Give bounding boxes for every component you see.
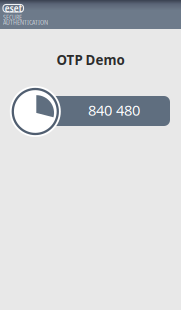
staticText: OTP Demo (56, 51, 124, 69)
staticText: AUTHENTICATION (3, 17, 48, 27)
staticText: SECURE (3, 12, 22, 22)
button[interactable]: One-time password 840 480 (0, 0, 181, 145)
staticText: eset (5, 1, 22, 15)
staticText: 840 480 (88, 100, 140, 120)
